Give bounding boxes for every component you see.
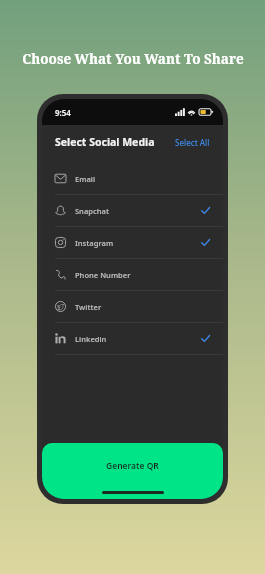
button[interactable]: Phone Number <box>42 259 223 290</box>
staticText: Instagram <box>75 238 114 248</box>
button[interactable]: Select All <box>175 137 210 148</box>
staticText: Select Social Media <box>55 135 155 149</box>
staticText: Generate QR <box>106 460 159 472</box>
button[interactable]: Email <box>42 163 223 194</box>
staticText: 9:54 <box>55 107 71 118</box>
staticText: Choose What You Want To Share <box>22 50 244 68</box>
button[interactable]: Linkedin <box>42 323 223 354</box>
staticText: Linkedin <box>75 334 107 344</box>
button[interactable]: Snapchat <box>42 195 223 226</box>
staticText: Twitter <box>75 302 102 312</box>
button[interactable]: Generate QR <box>42 443 223 499</box>
button[interactable]: Twitter <box>42 291 223 322</box>
staticText: Select All <box>175 137 210 148</box>
staticText: Email <box>75 174 96 184</box>
staticText: Snapchat <box>75 206 109 216</box>
button[interactable]: Instagram <box>42 227 223 258</box>
staticText: Phone Number <box>75 270 131 280</box>
